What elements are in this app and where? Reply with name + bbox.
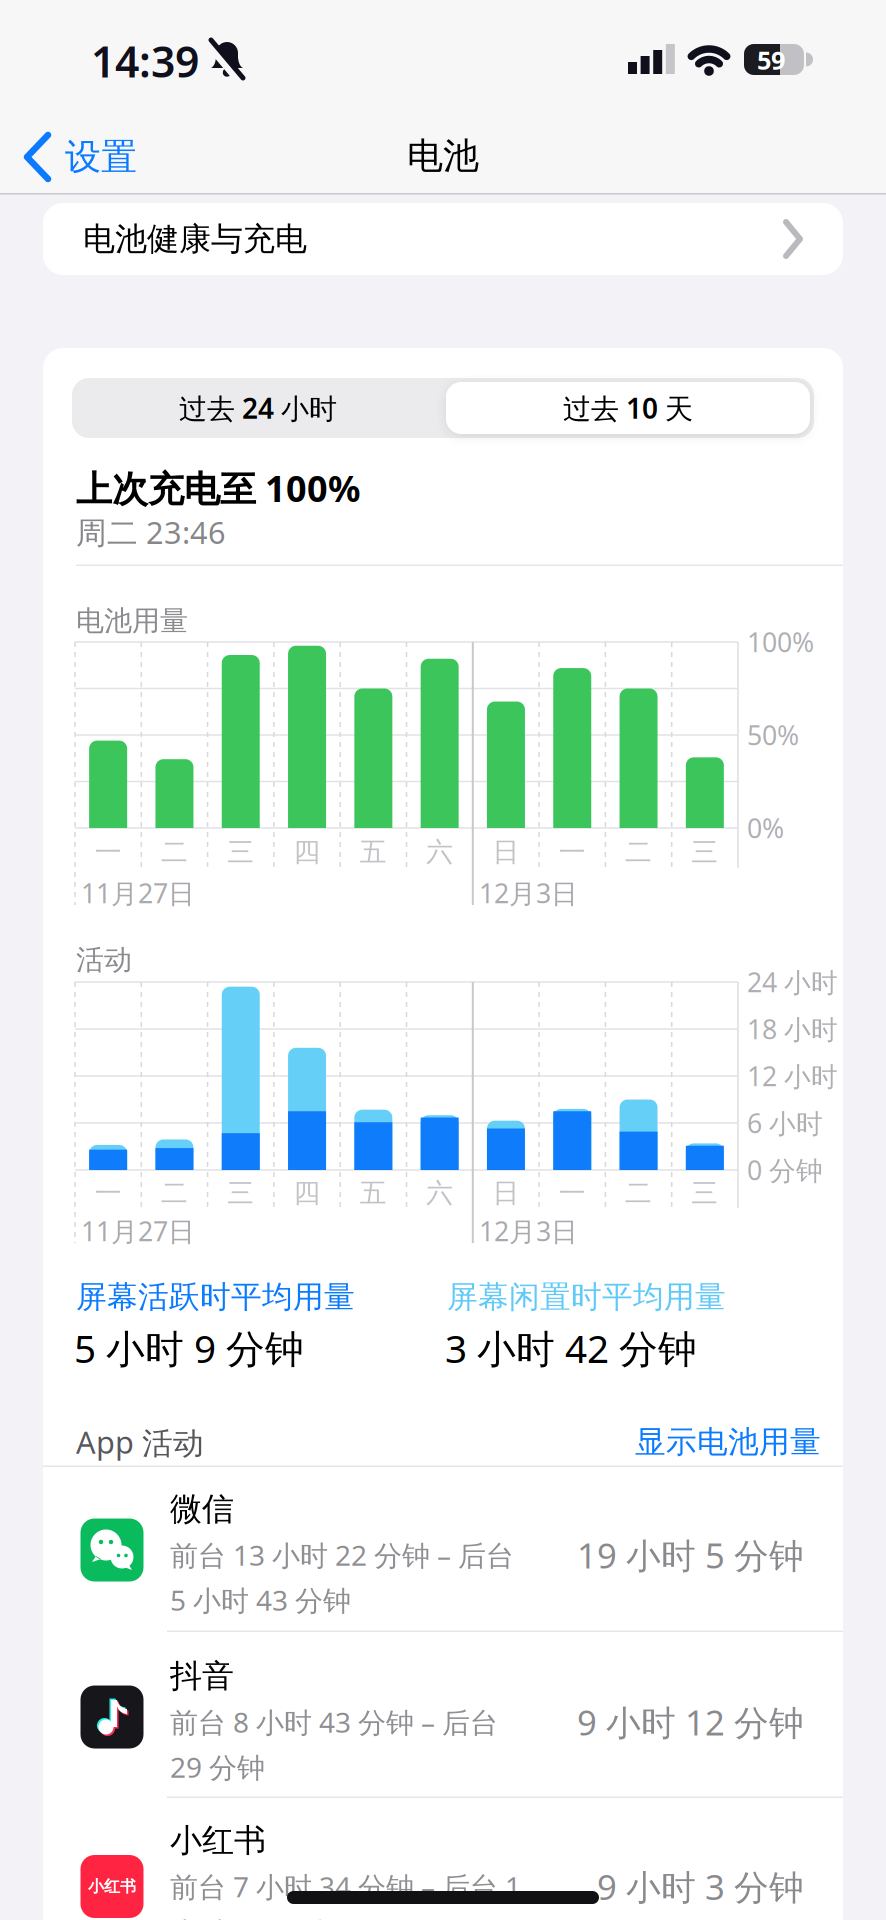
staticText: 一 (559, 836, 586, 868)
button[interactable]: 设置 (20, 124, 160, 190)
staticText: 四 (293, 1177, 320, 1209)
staticText: 3 小时 42 分钟 (445, 1322, 697, 1374)
staticText: 二 (161, 1177, 188, 1209)
staticText: 过去 10 天 (563, 389, 693, 427)
button[interactable]: 小红书 (43, 1796, 843, 1919)
button[interactable]: 微信 (43, 1466, 843, 1630)
staticText: 9 小时 3 分钟 (597, 1863, 804, 1909)
staticText: 一 (559, 1177, 586, 1209)
staticText: 29 分钟 (170, 1748, 265, 1786)
staticText: 5 小时 9 分钟 (74, 1322, 304, 1374)
staticText: 前台 8 小时 43 分钟 – 后台 (170, 1703, 498, 1741)
staticText: 五 (360, 1177, 387, 1209)
staticText: 微信 (170, 1489, 234, 1529)
staticText: 一 (95, 836, 122, 868)
staticText: 0 分钟 (747, 1152, 823, 1188)
button[interactable]: 过去 10 天 (444, 378, 812, 438)
button[interactable]: 显示电池用量 (521, 1415, 821, 1469)
staticText: 前台 13 小时 22 分钟 – 后台 (170, 1536, 514, 1574)
staticText: App 活动 (76, 1422, 204, 1462)
staticText: 电池 (407, 134, 479, 178)
staticText: 电池用量 (76, 604, 188, 638)
button[interactable]: 电池健康与充电 (43, 203, 843, 275)
staticText: 三 (691, 1177, 718, 1209)
staticText: 6 小时 (747, 1105, 823, 1141)
staticText: 屏幕活跃时平均用量 (76, 1278, 355, 1316)
staticText: 50% (747, 717, 799, 753)
button[interactable]: 过去 24 小时 (76, 378, 440, 438)
staticText: 上次充电至 100% (76, 464, 360, 512)
staticText: 二 (625, 1177, 652, 1209)
staticText: 二 (161, 836, 188, 868)
staticText: 二 (625, 836, 652, 868)
staticText: 18 小时 (747, 1011, 838, 1047)
staticText: 12 小时 (747, 1058, 838, 1094)
staticText: 小红书 (170, 1821, 266, 1860)
button[interactable]: 抖音 (43, 1631, 843, 1797)
staticText: 9 小时 12 分钟 (577, 1699, 804, 1745)
staticText: 日 (492, 836, 519, 868)
staticText: 六 (426, 836, 453, 868)
staticText: 0% (747, 810, 784, 846)
staticText: 三 (691, 836, 718, 868)
staticText: 六 (426, 1177, 453, 1209)
staticText: 四 (293, 836, 320, 868)
staticText: 12月3日 (479, 875, 578, 911)
staticText: 设置 (65, 135, 137, 179)
staticText: 11月27日 (81, 1213, 195, 1249)
staticText: 屏幕闲置时平均用量 (447, 1278, 726, 1316)
staticText: 100% (747, 624, 814, 660)
staticText: 抖音 (170, 1656, 234, 1696)
staticText: 三 (227, 1177, 254, 1209)
staticText: 小时 08 分钟 (170, 1913, 328, 1920)
staticText: 59 (757, 43, 785, 77)
staticText: 14:39 (91, 33, 199, 89)
staticText: 11月27日 (81, 875, 195, 911)
staticText: 一 (95, 1177, 122, 1209)
staticText: 显示电池用量 (635, 1423, 821, 1461)
staticText: 活动 (76, 943, 132, 977)
staticText: 三 (227, 836, 254, 868)
staticText: 五 (360, 836, 387, 868)
staticText: 12月3日 (479, 1213, 578, 1249)
staticText: 小红书 (88, 1877, 136, 1896)
staticText: 过去 24 小时 (179, 389, 337, 427)
staticText: 前台 7 小时 34 分钟 – 后台 1 (170, 1868, 521, 1905)
staticText: 日 (492, 1177, 519, 1209)
staticText: 5 小时 43 分钟 (170, 1581, 351, 1619)
staticText: 周二 23:46 (76, 512, 226, 552)
staticText: 24 小时 (747, 964, 838, 1000)
staticText: 电池健康与充电 (83, 219, 307, 259)
staticText: 19 小时 5 分钟 (577, 1532, 804, 1578)
